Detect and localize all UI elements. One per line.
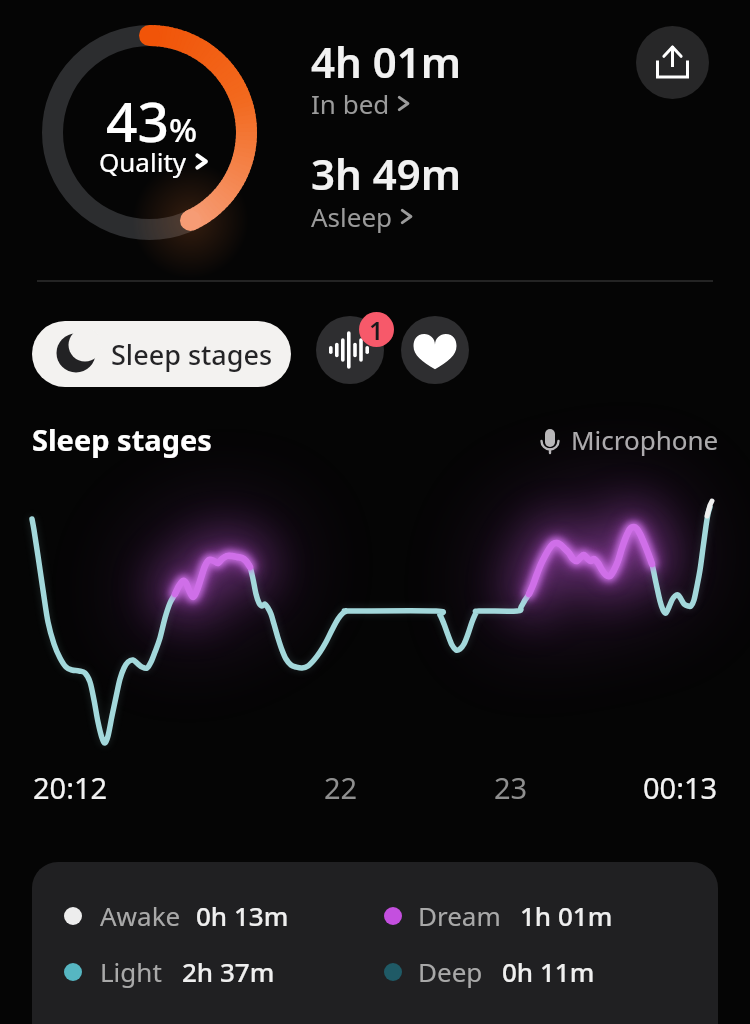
- button[interactable]: In bed: [311, 86, 409, 121]
- staticText: 3h 49m: [311, 145, 462, 202]
- staticText: Asleep: [311, 199, 393, 234]
- staticText: 23: [494, 768, 528, 807]
- button[interactable]: 43: [106, 83, 198, 158]
- staticText: Dream: [418, 898, 501, 933]
- staticText: Sleep stages: [111, 336, 273, 373]
- staticText: 20:12: [33, 768, 108, 807]
- staticText: 43: [106, 83, 169, 158]
- staticText: Microphone: [571, 422, 719, 457]
- button[interactable]: Quality: [99, 144, 207, 179]
- staticText: %: [169, 107, 198, 152]
- staticText: Light: [100, 954, 162, 989]
- staticText: 1: [369, 313, 384, 347]
- staticText: 0h 13m: [196, 898, 289, 933]
- staticText: 1h 01m: [520, 898, 613, 933]
- staticText: 4h 01m: [311, 33, 462, 90]
- staticText: Quality: [99, 144, 187, 179]
- staticText: In bed: [311, 86, 390, 121]
- button[interactable]: [316, 316, 384, 384]
- staticText: Deep: [418, 954, 483, 989]
- button[interactable]: Asleep: [311, 199, 412, 234]
- staticText: Sleep stages: [32, 420, 212, 459]
- staticText: 0h 11m: [502, 954, 595, 989]
- staticText: 2h 37m: [182, 954, 275, 989]
- button[interactable]: [401, 316, 469, 384]
- button[interactable]: Sleep stages: [32, 321, 291, 387]
- staticText: Awake: [100, 898, 181, 933]
- staticText: 00:13: [643, 768, 718, 807]
- button[interactable]: [636, 26, 709, 99]
- button[interactable]: Microphone: [541, 422, 719, 457]
- staticText: 22: [324, 768, 358, 807]
